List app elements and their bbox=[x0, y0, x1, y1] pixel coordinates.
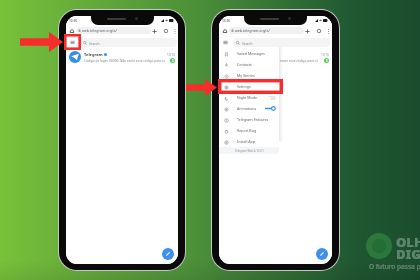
staticText: My Stories bbox=[237, 73, 255, 78]
staticText: Report Bug bbox=[237, 128, 257, 133]
staticText: Install App bbox=[237, 139, 255, 144]
button[interactable]: Home bbox=[69, 28, 75, 34]
button[interactable]: Menu bbox=[68, 38, 77, 47]
button[interactable]: Menu bbox=[221, 38, 230, 47]
staticText: Contacts bbox=[237, 62, 252, 67]
other: Pointer arrow bbox=[186, 79, 217, 96]
staticText: Telegram bbox=[237, 52, 256, 57]
button[interactable]: New tab bbox=[151, 28, 157, 34]
button[interactable]: Report Bug bbox=[219, 125, 279, 136]
staticText: 1 bbox=[172, 59, 174, 63]
staticText: 13:16 bbox=[69, 19, 78, 23]
staticText: Animations bbox=[237, 106, 257, 111]
staticText: O futuro passa pr bbox=[369, 262, 420, 271]
staticText: Settings bbox=[237, 84, 251, 89]
button[interactable]: web.telegram.org/a/ bbox=[229, 27, 304, 34]
button[interactable]: New message bbox=[316, 248, 328, 260]
staticText: Código de login: 00000. Não envie esse c… bbox=[237, 59, 323, 63]
button[interactable] bbox=[268, 96, 276, 100]
staticText: web.telegram.org/a/ bbox=[82, 28, 117, 33]
button[interactable]: Animations bbox=[219, 103, 279, 114]
staticText: DIG bbox=[396, 245, 420, 263]
button[interactable]: Tabs bbox=[163, 28, 169, 34]
other: Pointer arrow bbox=[20, 32, 63, 52]
staticText: 13:16 bbox=[222, 19, 231, 23]
staticText: Telegram bbox=[84, 52, 103, 57]
button[interactable]: web.telegram.org/a/ bbox=[76, 27, 151, 34]
button[interactable]: Search bbox=[233, 38, 331, 47]
button[interactable]: My Stories bbox=[219, 70, 279, 81]
staticText: Telegram Web A 10.0.1 bbox=[235, 149, 264, 153]
staticText: Search bbox=[89, 41, 100, 45]
staticText: Código de login: 00000. Não envie esse c… bbox=[84, 59, 169, 63]
staticText: 1 bbox=[326, 59, 328, 63]
button[interactable]: Tabs bbox=[316, 28, 322, 34]
button[interactable]: Install App bbox=[219, 136, 279, 147]
button[interactable]: New message bbox=[162, 248, 174, 260]
staticText: OLH bbox=[396, 233, 420, 251]
button[interactable]: More options bbox=[174, 28, 176, 34]
button[interactable]: Saved Messages bbox=[219, 48, 279, 59]
button[interactable]: Search bbox=[80, 38, 177, 47]
button[interactable]: Contacts bbox=[219, 59, 279, 70]
button[interactable]: Telegram bbox=[66, 48, 178, 66]
staticText: Search bbox=[242, 41, 253, 45]
button[interactable]: Night Mode bbox=[219, 92, 279, 103]
staticText: web.telegram.org/a/ bbox=[235, 28, 270, 33]
button[interactable] bbox=[265, 106, 276, 111]
button[interactable]: New tab bbox=[304, 28, 310, 34]
staticText: Telegram Features bbox=[237, 117, 269, 122]
button[interactable]: More options bbox=[327, 28, 330, 34]
staticText: Saved Messages bbox=[237, 51, 265, 56]
button[interactable]: Settings bbox=[219, 81, 279, 92]
button[interactable]: Telegram bbox=[219, 48, 332, 66]
button[interactable]: Home bbox=[222, 28, 228, 34]
staticText: Night Mode bbox=[237, 95, 257, 100]
staticText: 13:16 bbox=[167, 53, 175, 57]
button[interactable]: Telegram Features bbox=[219, 114, 279, 125]
staticText: 13:16 bbox=[321, 53, 329, 57]
